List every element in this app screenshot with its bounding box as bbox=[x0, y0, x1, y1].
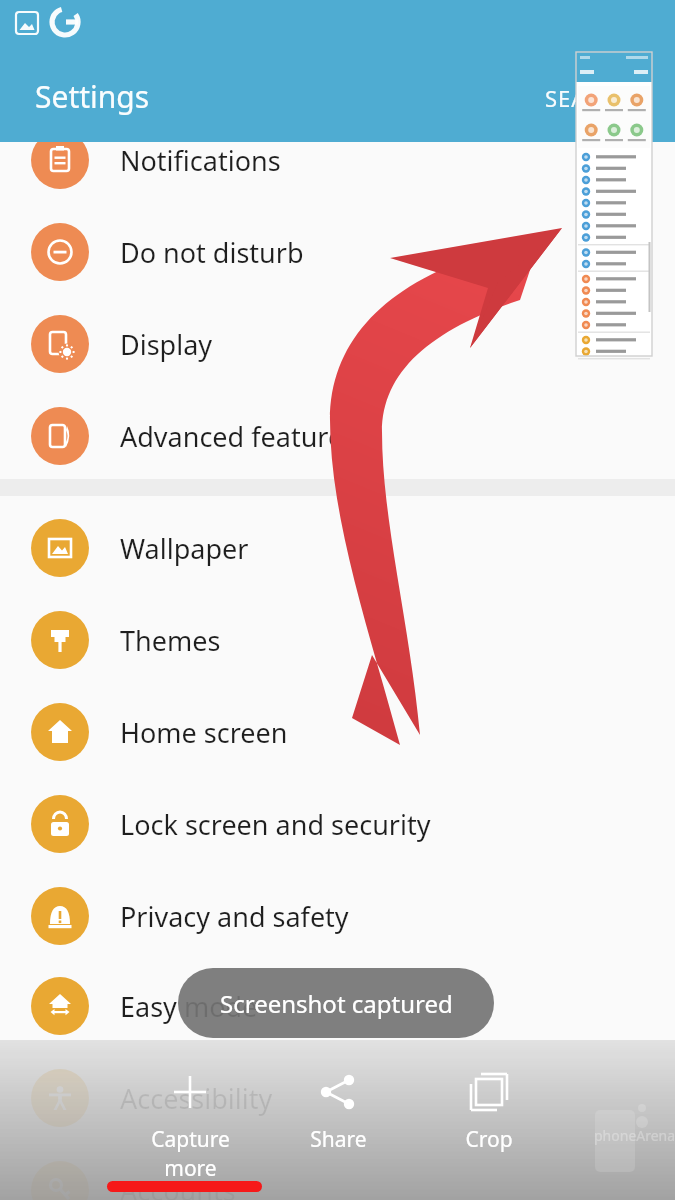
button[interactable]: Do not disturb bbox=[0, 206, 675, 298]
staticText: Capture bbox=[151, 1125, 230, 1154]
staticText: SEARCH bbox=[545, 83, 634, 113]
button[interactable]: Advanced features bbox=[0, 390, 675, 482]
staticText: Lock screen and security bbox=[120, 806, 431, 843]
staticText: Do not disturb bbox=[120, 234, 304, 271]
button[interactable]: Themes bbox=[0, 594, 675, 686]
staticText: Display bbox=[120, 326, 213, 363]
button[interactable]: Notifications bbox=[0, 114, 675, 206]
staticText: Advanced features bbox=[120, 418, 357, 455]
button[interactable]: Display bbox=[0, 298, 675, 390]
button[interactable]: Easy mode bbox=[0, 960, 675, 1052]
button[interactable]: Lock screen and security bbox=[0, 778, 675, 870]
staticText: Notifications bbox=[120, 142, 281, 179]
staticText: Accessibility bbox=[120, 1080, 273, 1117]
staticText: Accounts bbox=[120, 1172, 236, 1200]
staticText: Share bbox=[310, 1125, 367, 1154]
button[interactable]: Accounts bbox=[0, 1144, 675, 1200]
staticText: Easy mode bbox=[120, 988, 258, 1025]
staticText: Screenshot captured bbox=[220, 987, 453, 1020]
button[interactable]: Screenshot thumbnail bbox=[576, 52, 652, 356]
staticText: more bbox=[164, 1154, 217, 1183]
button[interactable]: Crop bbox=[429, 1068, 549, 1178]
staticText: phoneArena bbox=[594, 1126, 675, 1145]
button[interactable]: Wallpaper bbox=[0, 502, 675, 594]
button[interactable]: Home screen bbox=[0, 686, 675, 778]
button[interactable]: Accessibility bbox=[0, 1052, 675, 1144]
button[interactable]: Capture more bbox=[130, 1068, 250, 1178]
staticText: Privacy and safety bbox=[120, 898, 349, 935]
staticText: Crop bbox=[465, 1125, 513, 1154]
staticText: Wallpaper bbox=[120, 530, 249, 567]
button[interactable]: Privacy and safety bbox=[0, 870, 675, 962]
staticText: Settings bbox=[35, 76, 150, 117]
staticText: Home screen bbox=[120, 714, 288, 751]
staticText: Themes bbox=[120, 622, 221, 659]
button[interactable]: Share bbox=[278, 1068, 398, 1178]
